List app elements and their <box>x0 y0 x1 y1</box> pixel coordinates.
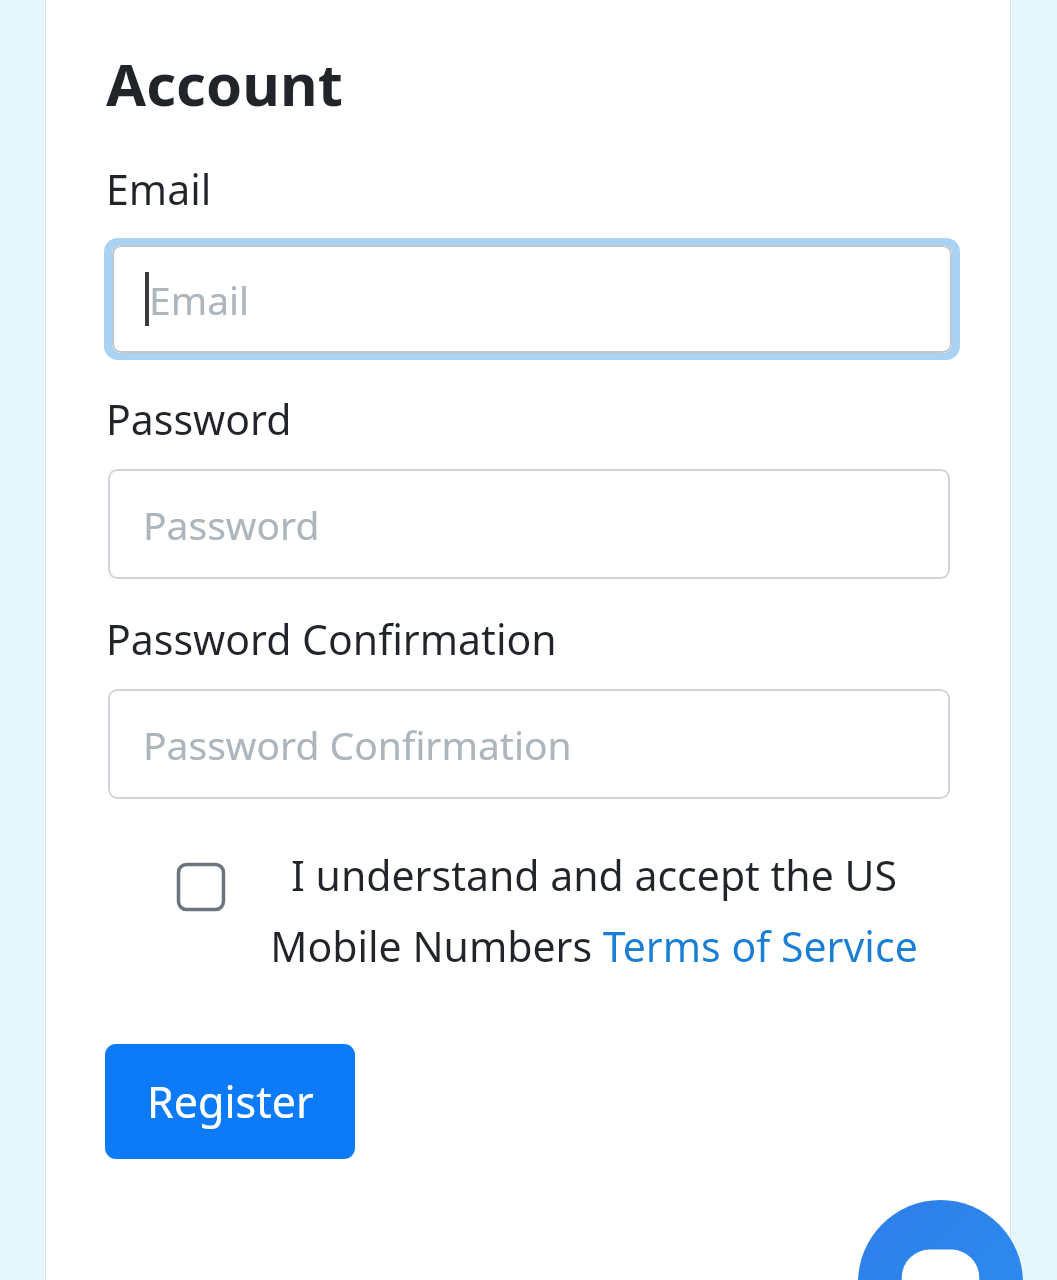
staticText: Email <box>106 161 212 217</box>
staticText: I understand and accept the US Mobile Nu… <box>237 847 951 974</box>
other: Accept terms checkbox <box>177 863 225 911</box>
staticText: Password <box>143 498 320 551</box>
button[interactable]: Register <box>105 1044 355 1159</box>
button[interactable]: Password <box>108 469 950 579</box>
button[interactable]: Email <box>104 238 960 360</box>
staticText: Password Confirmation <box>106 611 557 667</box>
staticText: Register <box>147 1072 314 1131</box>
button[interactable]: Accept terms checkbox <box>106 847 951 974</box>
staticText: Password <box>106 391 292 447</box>
staticText: Account <box>106 44 343 123</box>
button[interactable]: Password Confirmation <box>108 689 950 799</box>
staticText: Password Confirmation <box>143 718 572 771</box>
button[interactable]: Open chat <box>858 1200 1023 1280</box>
staticText: Email <box>149 273 250 326</box>
